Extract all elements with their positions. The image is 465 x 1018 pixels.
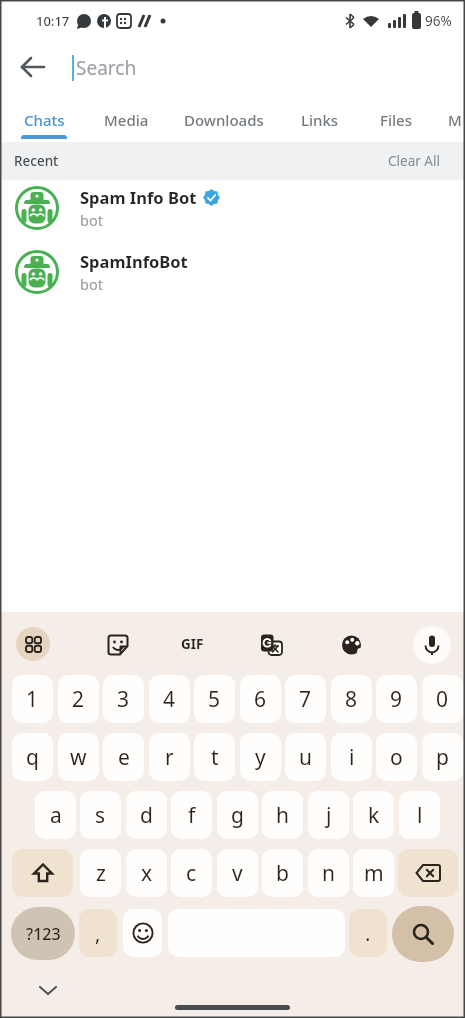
button[interactable]: s <box>80 791 121 839</box>
button[interactable]: k <box>353 791 394 839</box>
button[interactable]: h <box>262 791 303 839</box>
button[interactable]: t <box>194 733 235 781</box>
button[interactable]: n <box>308 849 349 897</box>
button[interactable]: r <box>149 733 190 781</box>
staticText: 7 <box>299 685 312 714</box>
button[interactable]: p <box>422 733 463 781</box>
button[interactable]: ?123 <box>11 907 75 960</box>
button[interactable]: u <box>285 733 326 781</box>
staticText: y <box>255 743 266 772</box>
staticText: bot <box>80 210 103 230</box>
staticText: p <box>436 743 449 772</box>
staticText: w <box>70 743 87 772</box>
button[interactable]: v <box>217 849 258 897</box>
button[interactable]: l <box>399 791 440 839</box>
staticText: b <box>276 859 289 888</box>
button[interactable]: 2 <box>58 675 99 723</box>
button[interactable] <box>338 631 366 659</box>
button[interactable]: 9 <box>376 675 417 723</box>
staticText: d <box>140 801 153 830</box>
staticText: Chats <box>24 110 65 130</box>
staticText: . <box>365 920 371 947</box>
button[interactable]: Links <box>288 98 352 142</box>
staticText: t <box>211 743 219 772</box>
button[interactable]: g <box>217 791 258 839</box>
staticText: GIF <box>181 635 204 653</box>
staticText: n <box>322 859 335 888</box>
button[interactable] <box>257 631 285 659</box>
button[interactable] <box>413 626 451 664</box>
button[interactable] <box>104 631 132 659</box>
staticText: c <box>186 859 197 888</box>
staticText: M <box>448 110 462 130</box>
staticText: f <box>188 801 196 830</box>
button[interactable]: o <box>376 733 417 781</box>
button[interactable]: GIF <box>172 629 212 659</box>
button[interactable] <box>12 46 54 88</box>
button[interactable]: b <box>262 849 303 897</box>
staticText: h <box>276 801 289 830</box>
staticText: Media <box>104 110 149 130</box>
button[interactable]: a <box>35 791 76 839</box>
staticText: a <box>50 801 62 830</box>
button[interactable]: i <box>331 733 372 781</box>
button[interactable] <box>123 909 162 957</box>
staticText: Links <box>301 110 339 130</box>
staticText: o <box>390 743 403 772</box>
staticText: Downloads <box>184 110 264 130</box>
button[interactable]: Spam Info Bot <box>0 180 465 244</box>
button[interactable]: j <box>308 791 349 839</box>
staticText: 3 <box>117 685 130 714</box>
button[interactable]: 3 <box>103 675 144 723</box>
staticText: 1 <box>26 685 39 714</box>
button[interactable]: M <box>440 98 465 142</box>
button[interactable]: 1 <box>12 675 53 723</box>
staticText: Spam Info Bot <box>80 186 197 208</box>
button[interactable]: c <box>171 849 212 897</box>
button[interactable] <box>398 849 458 897</box>
staticText: Recent <box>14 152 59 170</box>
button[interactable]: Chats <box>10 98 78 142</box>
button[interactable]: Files <box>365 98 427 142</box>
button[interactable]: 0 <box>422 675 463 723</box>
staticText: 5 <box>208 685 221 714</box>
button[interactable]: 5 <box>194 675 235 723</box>
button[interactable]: w <box>58 733 99 781</box>
button[interactable]: 7 <box>285 675 326 723</box>
button[interactable]: . <box>349 909 387 957</box>
button[interactable] <box>12 849 73 897</box>
button[interactable] <box>392 906 454 962</box>
button[interactable] <box>16 627 50 661</box>
button[interactable]: Downloads <box>170 98 278 142</box>
staticText: 4 <box>163 685 176 714</box>
staticText: j <box>326 801 332 830</box>
staticText: i <box>349 743 355 772</box>
staticText: l <box>417 801 423 830</box>
staticText: q <box>26 743 39 772</box>
staticText: s <box>95 801 106 830</box>
button[interactable]: 8 <box>331 675 372 723</box>
staticText: k <box>368 801 380 830</box>
button[interactable]: 4 <box>149 675 190 723</box>
button[interactable]: q <box>12 733 53 781</box>
staticText: r <box>165 743 174 772</box>
staticText: u <box>299 743 312 772</box>
button[interactable]: x <box>126 849 167 897</box>
button[interactable]: Media <box>92 98 160 142</box>
button[interactable]: , <box>79 909 117 957</box>
staticText: 2 <box>72 685 85 714</box>
staticText: bot <box>80 274 103 294</box>
button[interactable]: e <box>103 733 144 781</box>
button[interactable]: 6 <box>240 675 281 723</box>
button[interactable]: m <box>353 849 394 897</box>
button[interactable]: d <box>126 791 167 839</box>
staticText: SpamInfoBot <box>80 250 188 272</box>
button[interactable]: Clear All <box>388 152 440 170</box>
button[interactable]: y <box>240 733 281 781</box>
staticText: 10:17 <box>36 12 70 30</box>
button[interactable]: f <box>171 791 212 839</box>
button[interactable]: z <box>80 849 121 897</box>
staticText: 6 <box>254 685 267 714</box>
button[interactable]: SpamInfoBot <box>0 244 465 308</box>
